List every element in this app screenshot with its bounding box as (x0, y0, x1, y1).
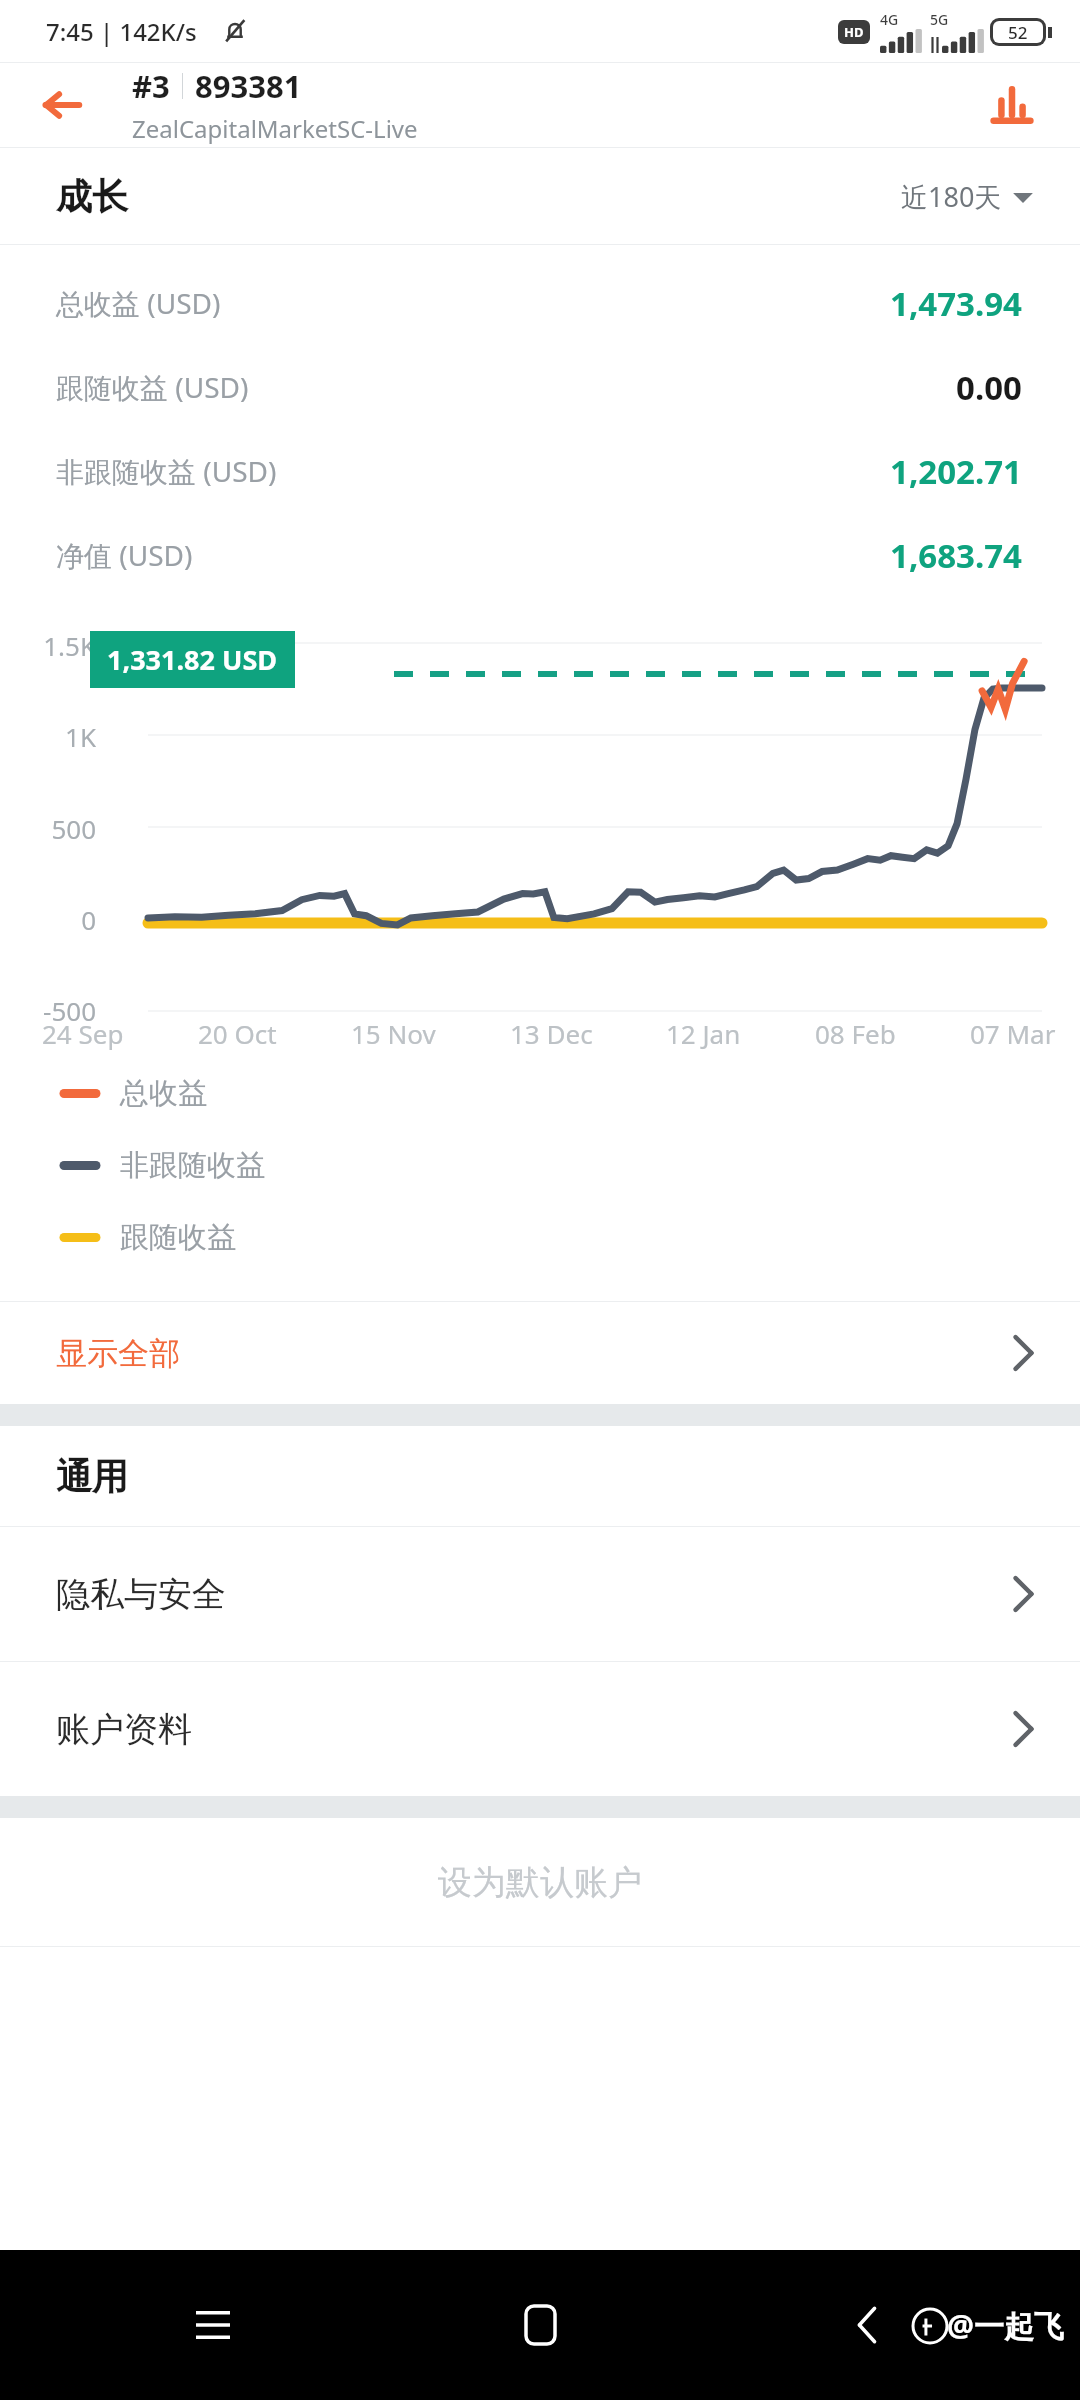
staticText: 0.00 (956, 365, 1022, 410)
staticText: 账户资料 (56, 1708, 192, 1751)
staticText: 跟随收益 (120, 1219, 236, 1256)
staticText: 成长 (56, 174, 128, 219)
staticText: 0 (0, 902, 96, 937)
staticText: 20 Oct (198, 1016, 277, 1051)
staticText: 1,331.82 USD (107, 641, 278, 678)
staticText: 非跟随收益 (USD) (56, 452, 277, 490)
staticText: 1.5K (0, 628, 96, 663)
staticText: HD (844, 23, 864, 41)
staticText: 5G (930, 10, 949, 29)
button[interactable]: Home (497, 2282, 583, 2368)
staticText: @一起飞 (947, 2305, 1064, 2346)
staticText: 跟随收益 (USD) (56, 368, 249, 406)
staticText: 1,683.74 (890, 533, 1022, 578)
staticText: 总收益 (120, 1075, 207, 1112)
staticText: 07 Mar (970, 1016, 1056, 1051)
staticText: 500 (0, 811, 96, 846)
staticText: 13 Dec (510, 1016, 593, 1051)
staticText: 52 (1008, 21, 1028, 43)
button[interactable]: 显示全部 (0, 1302, 1080, 1404)
staticText: 非跟随收益 (120, 1147, 265, 1184)
staticText: 4G (880, 10, 899, 29)
button[interactable]: Recents (170, 2282, 256, 2368)
button[interactable]: Back (824, 2282, 910, 2368)
staticText: 12 Jan (666, 1016, 741, 1051)
button[interactable]: Back (34, 77, 90, 133)
staticText: 08 Feb (815, 1016, 896, 1051)
staticText: ZealCapitalMarketSC-Live (132, 112, 418, 145)
staticText: 7:45 | 142K/s (46, 15, 197, 48)
button[interactable]: 隐私与安全 (0, 1527, 1080, 1661)
staticText: 设为默认账户 (438, 1861, 642, 1904)
button[interactable]: 账户资料 (0, 1662, 1080, 1796)
staticText: 总收益 (USD) (56, 284, 221, 322)
staticText: 15 Nov (351, 1016, 436, 1051)
staticText: 1,202.71 (890, 449, 1022, 494)
button[interactable]: 设为默认账户 (0, 1818, 1080, 1946)
staticText: -500 (0, 993, 96, 1028)
staticText: 24 Sep (42, 1016, 124, 1051)
staticText: 通用 (56, 1454, 128, 1499)
staticText: 1K (0, 719, 96, 754)
staticText: 1,473.94 (890, 281, 1022, 326)
staticText: 893381 (195, 65, 302, 107)
staticText: 显示全部 (56, 1334, 180, 1373)
button[interactable]: Statistics (980, 73, 1044, 137)
staticText: 净值 (USD) (56, 536, 193, 574)
staticText: 近180天 (901, 178, 1002, 215)
staticText: #3 (132, 65, 170, 107)
button[interactable]: 近180天 (893, 170, 1042, 223)
button[interactable]: 1,331.82 USD (90, 631, 295, 688)
staticText: 隐私与安全 (56, 1573, 226, 1616)
